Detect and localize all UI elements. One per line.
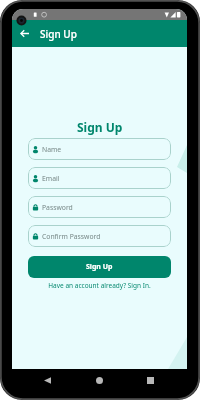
staticText: Confirm Password bbox=[42, 232, 101, 241]
button[interactable]: Back bbox=[37, 370, 57, 390]
staticText: Sign Up bbox=[40, 27, 77, 41]
button[interactable]: Name bbox=[28, 138, 171, 160]
staticText: Email bbox=[42, 174, 60, 183]
button[interactable]: Email bbox=[28, 167, 171, 189]
staticText: Sign Up bbox=[77, 119, 123, 135]
button[interactable]: Have an account already? Sign In. bbox=[28, 281, 171, 290]
button[interactable]: Home bbox=[89, 370, 109, 390]
button[interactable]: Confirm Password bbox=[28, 225, 171, 247]
button[interactable]: Sign Up bbox=[28, 256, 171, 278]
staticText: Name bbox=[42, 145, 62, 154]
staticText: Have an account already? Sign In. bbox=[48, 281, 151, 290]
button[interactable]: Password bbox=[28, 196, 171, 218]
button[interactable]: Back bbox=[15, 24, 34, 43]
staticText: Sign Up bbox=[86, 262, 113, 272]
button[interactable]: Recent apps bbox=[140, 370, 160, 390]
staticText: Password bbox=[42, 203, 73, 212]
